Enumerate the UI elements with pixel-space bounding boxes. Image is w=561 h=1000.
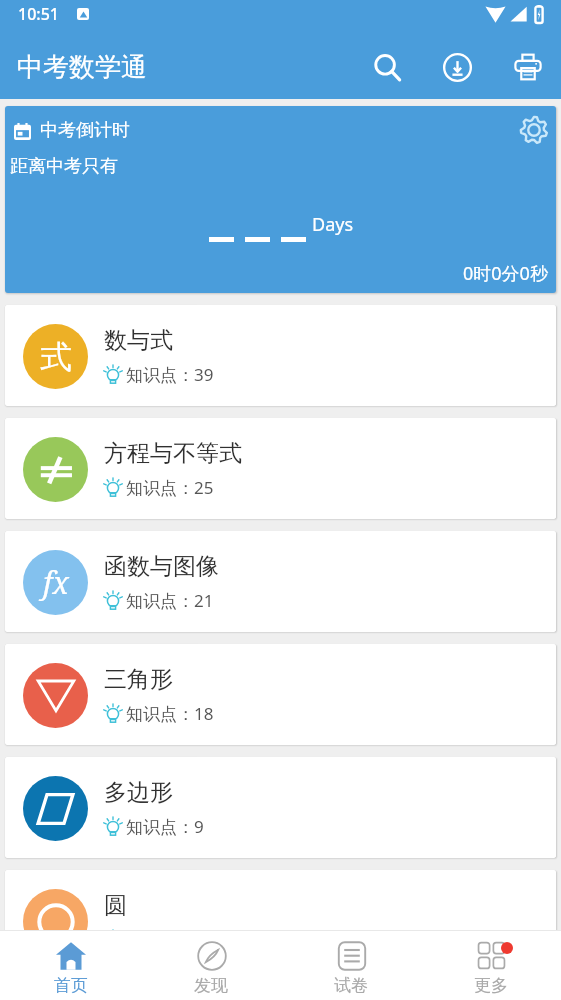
staticText: 知识点：18	[126, 702, 214, 725]
staticText: 发现	[194, 975, 228, 996]
button[interactable]: 更多	[421, 931, 561, 1000]
staticText: 更多	[474, 975, 508, 996]
staticText: 距离中考只有	[10, 155, 118, 178]
staticText: 知识点：25	[126, 476, 214, 499]
button[interactable]: 试卷	[281, 931, 421, 1000]
staticText: 知识点：9	[126, 815, 204, 838]
button[interactable]: Download	[425, 35, 489, 99]
staticText: 多边形	[104, 778, 173, 807]
staticText: 首页	[54, 975, 88, 996]
staticText: 方程与不等式	[104, 439, 242, 468]
button[interactable]: Search	[355, 35, 419, 99]
staticText: Days	[312, 212, 354, 237]
button[interactable]: 发现	[141, 931, 281, 1000]
button[interactable]: fx	[5, 531, 556, 632]
button[interactable]: 多边形	[5, 757, 556, 858]
button[interactable]: Settings	[514, 110, 554, 150]
staticText: 0时0分0秒	[463, 261, 548, 286]
staticText: 中考倒计时	[40, 119, 130, 142]
button[interactable]: 方程与不等式	[5, 418, 556, 519]
staticText: 10:51	[18, 3, 59, 25]
button[interactable]: 三角形	[5, 644, 556, 745]
button[interactable]: 式	[5, 305, 556, 406]
staticText: 知识点：21	[126, 589, 214, 612]
staticText: 知识点：39	[126, 363, 214, 386]
staticText: 圆	[104, 891, 127, 920]
button[interactable]: 圆	[5, 870, 556, 930]
staticText: 式	[40, 337, 72, 377]
button[interactable]: 中考倒计时	[5, 106, 556, 293]
button[interactable]: 首页	[0, 931, 141, 1000]
staticText: fx	[43, 562, 69, 603]
staticText: 函数与图像	[104, 552, 219, 581]
staticText: 数与式	[104, 326, 173, 355]
button[interactable]: Print	[496, 35, 560, 99]
staticText: 三角形	[104, 665, 173, 694]
staticText: 中考数学通	[17, 51, 147, 84]
staticText: 试卷	[334, 975, 368, 996]
